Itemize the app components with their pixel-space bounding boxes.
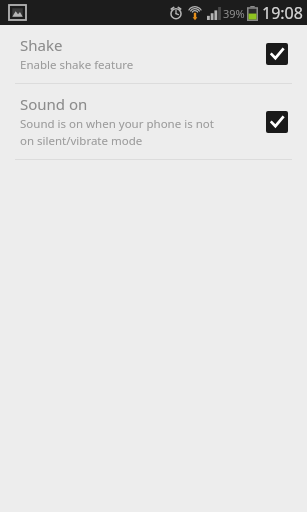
staticText: Sound on — [20, 94, 88, 114]
staticText: 39% — [223, 6, 245, 21]
staticText: Shake — [20, 35, 63, 55]
button[interactable]: Toggle setting — [263, 40, 291, 68]
staticText: Enable shake feature — [20, 57, 134, 73]
button[interactable]: Toggle setting — [263, 108, 291, 136]
staticText: on silent/vibrate mode — [20, 133, 143, 149]
button[interactable]: Shake — [0, 25, 307, 83]
button[interactable]: Sound on — [0, 84, 307, 159]
staticText: Sound is on when your phone is not — [20, 116, 214, 132]
staticText: 19:08 — [262, 2, 303, 24]
